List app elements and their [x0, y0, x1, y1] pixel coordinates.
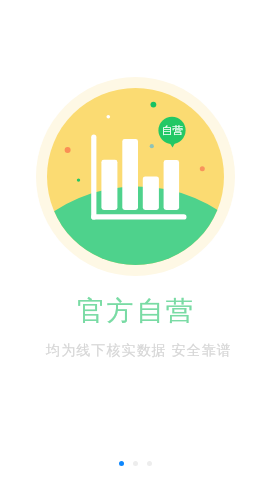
- button[interactable]: Page 1 of 3: [113, 455, 158, 472]
- staticText: 官方自营: [76, 294, 194, 328]
- staticText: 均为线下核实数据 安全靠谱: [46, 340, 232, 359]
- staticText: 自营: [162, 124, 183, 137]
